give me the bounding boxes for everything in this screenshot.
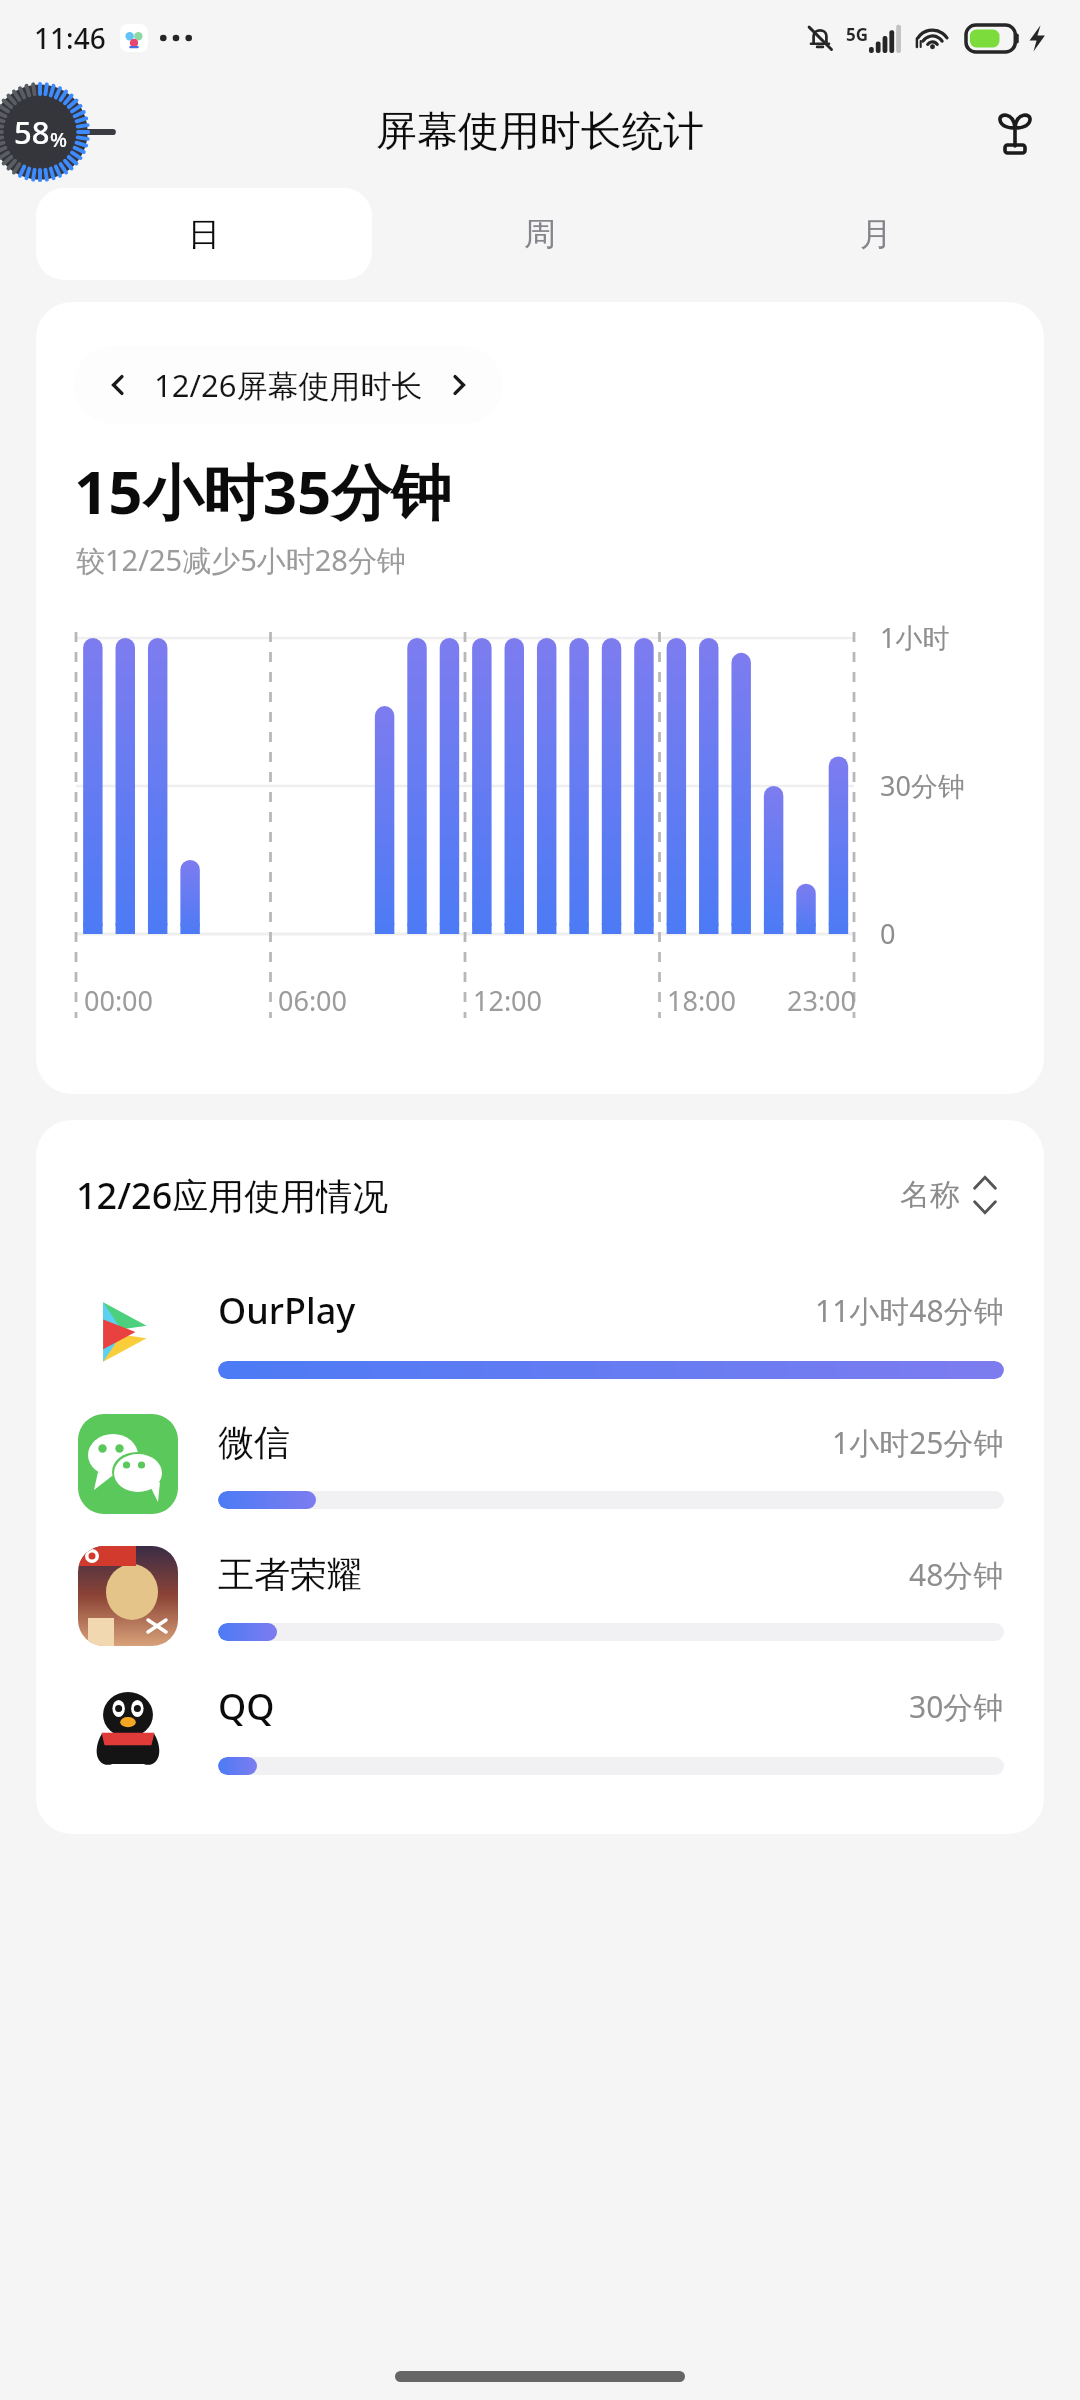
staticText: 0 (880, 915, 896, 952)
staticText: 名称 (900, 1176, 960, 1214)
staticText: 11小时48分钟 (815, 1290, 1004, 1331)
staticText: 00:00 (84, 982, 154, 1019)
staticText: 11:46 (34, 19, 106, 57)
button[interactable]: 名称 (894, 1168, 1004, 1222)
staticText: 5G (846, 23, 869, 46)
button[interactable]: Focus mode (980, 97, 1050, 167)
staticText: % (50, 126, 68, 153)
staticText: 12:00 (473, 982, 543, 1019)
staticText: 1小时 (880, 619, 950, 656)
button[interactable]: Battery 58 percent (0, 76, 100, 188)
staticText: 12/26应用使用情况 (76, 1171, 389, 1220)
button[interactable]: 微信 (36, 1398, 1044, 1530)
staticText: 月 (860, 214, 892, 254)
staticText: 15小时35分钟 (74, 450, 452, 532)
staticText: 微信 (218, 1420, 290, 1465)
button[interactable]: 王者荣耀 (36, 1530, 1044, 1662)
staticText: 23:00 (787, 982, 857, 1019)
staticText: QQ (218, 1682, 275, 1731)
staticText: 王者荣耀 (218, 1552, 362, 1597)
button[interactable]: QQ (36, 1662, 1044, 1794)
staticText: 周 (524, 214, 556, 254)
staticText: 58 (14, 111, 50, 153)
staticText: 30分钟 (909, 1686, 1004, 1727)
button[interactable]: 月 (708, 188, 1044, 280)
staticText: 12/26屏幕使用时长 (154, 364, 423, 406)
staticText: 18:00 (667, 982, 737, 1019)
staticText: 较12/25减少5小时28分钟 (76, 540, 406, 580)
staticText: OurPlay (218, 1286, 356, 1335)
staticText: 06:00 (278, 982, 348, 1019)
button[interactable]: OurPlay (36, 1266, 1044, 1398)
staticText: 30分钟 (880, 767, 965, 804)
staticText: 日 (188, 214, 220, 254)
button[interactable]: 日 (36, 188, 372, 280)
button[interactable]: 12/26屏幕使用时长 (74, 346, 503, 424)
button[interactable]: 周 (372, 188, 708, 280)
staticText: 48分钟 (909, 1554, 1004, 1595)
staticText: 1小时25分钟 (832, 1422, 1004, 1463)
staticText: 屏幕使用时长统计 (376, 106, 704, 158)
